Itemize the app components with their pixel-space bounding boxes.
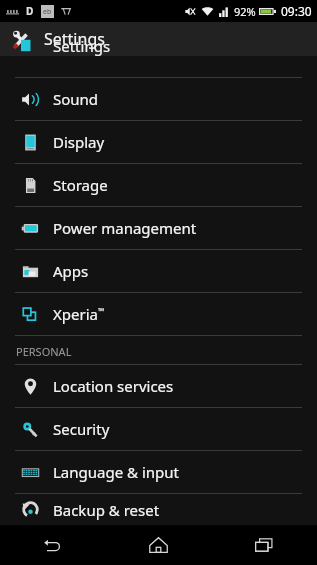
button[interactable]: Sound [0, 78, 317, 120]
staticText: Backup & reset [53, 500, 160, 520]
button[interactable]: Recent apps [211, 525, 317, 565]
staticText: Xperia [53, 304, 98, 324]
staticText: Power management [53, 218, 197, 238]
staticText: Security [53, 419, 110, 439]
button[interactable]: Xperia [0, 293, 317, 335]
staticText: Settings [44, 28, 105, 50]
staticText: eb [43, 7, 52, 17]
button[interactable]: Storage [0, 164, 317, 206]
staticText: Sound [53, 89, 99, 109]
button[interactable]: Back [0, 525, 105, 565]
staticText: Storage [53, 175, 108, 195]
button[interactable]: Display [0, 121, 317, 163]
staticText: 92% [234, 4, 256, 19]
button[interactable]: Backup & reset [0, 494, 317, 525]
staticText: ™ [98, 305, 105, 316]
button[interactable]: Language & input [0, 451, 317, 493]
staticText: Language & input [53, 462, 179, 482]
staticText: Apps [53, 261, 89, 281]
button[interactable]: Apps [0, 250, 317, 292]
staticText: Display [53, 132, 105, 152]
staticText: 09:30 [281, 3, 312, 19]
staticText: Settings [53, 36, 111, 56]
staticText: D [26, 4, 34, 18]
button[interactable]: Security [0, 408, 317, 450]
button[interactable]: Power management [0, 207, 317, 249]
button[interactable]: Home [105, 525, 211, 565]
button[interactable]: Settings [0, 22, 317, 56]
staticText: Location services [53, 376, 174, 396]
button[interactable]: Location services [0, 365, 317, 407]
staticText: PERSONAL [16, 344, 72, 359]
